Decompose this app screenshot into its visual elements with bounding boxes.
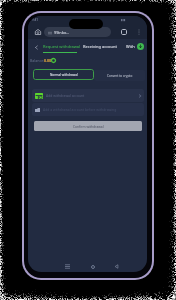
button[interactable]: Back [33, 44, 39, 50]
staticText: Add a withdrawal account before withdraw… [43, 107, 117, 112]
button[interactable]: Back [113, 263, 120, 270]
button[interactable]: Add a withdrawal account before withdraw… [32, 103, 144, 116]
staticText: Confirm withdrawal [73, 124, 104, 128]
button[interactable]: Add withdrawal account [32, 89, 144, 102]
button[interactable]: Tabs [120, 28, 127, 35]
button[interactable]: More options [135, 28, 142, 35]
button[interactable]: Receiving account [83, 44, 117, 49]
button[interactable]: Download [137, 43, 144, 50]
staticText: Add withdrawal account [46, 93, 138, 98]
staticText: ▮▮▮ [121, 18, 126, 21]
staticText: 99inbo... [54, 30, 70, 35]
button[interactable]: With [126, 44, 135, 49]
button[interactable]: Home [89, 263, 96, 270]
staticText: Balance: [30, 58, 45, 63]
staticText: 0.00 [44, 58, 52, 63]
button[interactable]: Home [34, 28, 41, 35]
staticText: Normal withdrawal [50, 73, 78, 77]
button[interactable]: Convert to crypto [94, 70, 145, 81]
button[interactable]: Normal withdrawal [33, 69, 94, 80]
button[interactable]: Confirm withdrawal [34, 121, 142, 131]
button[interactable]: 99inbo... [44, 27, 111, 37]
staticText: Convert to crypto [107, 74, 133, 78]
button[interactable]: Refresh [51, 58, 56, 63]
staticText: 9:41 [32, 18, 38, 22]
button[interactable]: Request withdrawal [43, 44, 81, 49]
button[interactable]: Recent apps [64, 263, 71, 270]
